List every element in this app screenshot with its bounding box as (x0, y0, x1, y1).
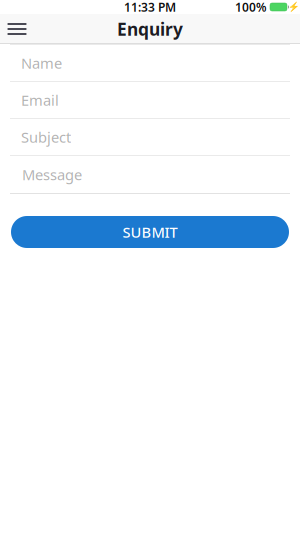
staticText: ⚡ (287, 2, 299, 12)
staticText: Name (21, 53, 62, 73)
staticText: 100% (235, 0, 267, 15)
button[interactable]: SUBMIT (11, 216, 289, 248)
staticText: Enquiry (117, 17, 183, 40)
staticText: Message (22, 165, 82, 184)
staticText: 11:33 PM (124, 0, 176, 15)
staticText: Email (21, 90, 59, 110)
button[interactable]: Menu (0, 14, 34, 44)
staticText: Subject (21, 127, 71, 147)
staticText: SUBMIT (122, 222, 177, 242)
